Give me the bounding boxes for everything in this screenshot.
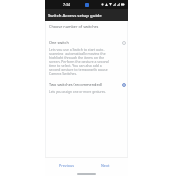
button[interactable]: Previous (45, 160, 80, 171)
staticText: screen. Perform the gesture a second (49, 59, 109, 63)
staticText: time to select. You can also add a (49, 63, 102, 67)
staticText: Two switches (recommended) (49, 82, 103, 87)
button[interactable]: Switch Access setup guide (45, 9, 128, 21)
staticText: Lets you assign one or more gestures. (49, 90, 106, 94)
button[interactable]: Next (95, 160, 128, 171)
button[interactable]: One switch (45, 40, 128, 75)
staticText: 7:34 (63, 2, 71, 7)
staticText: Switch Access setup guide (48, 12, 102, 18)
staticText: Next (101, 163, 110, 168)
staticText: scanning, automatically moving the (49, 51, 106, 55)
staticText: One switch (49, 40, 69, 45)
staticText: Previous (59, 163, 75, 168)
staticText: highlight through the items on the (49, 55, 105, 59)
button[interactable]: Two switches (recommended) (45, 82, 128, 94)
staticText: second gesture to temporarily pause (49, 67, 108, 71)
staticText: Lets you use a Switch to start auto- (49, 47, 105, 51)
staticText: Choose number of switches (49, 24, 99, 29)
staticText: Camera Switches. (49, 71, 78, 75)
